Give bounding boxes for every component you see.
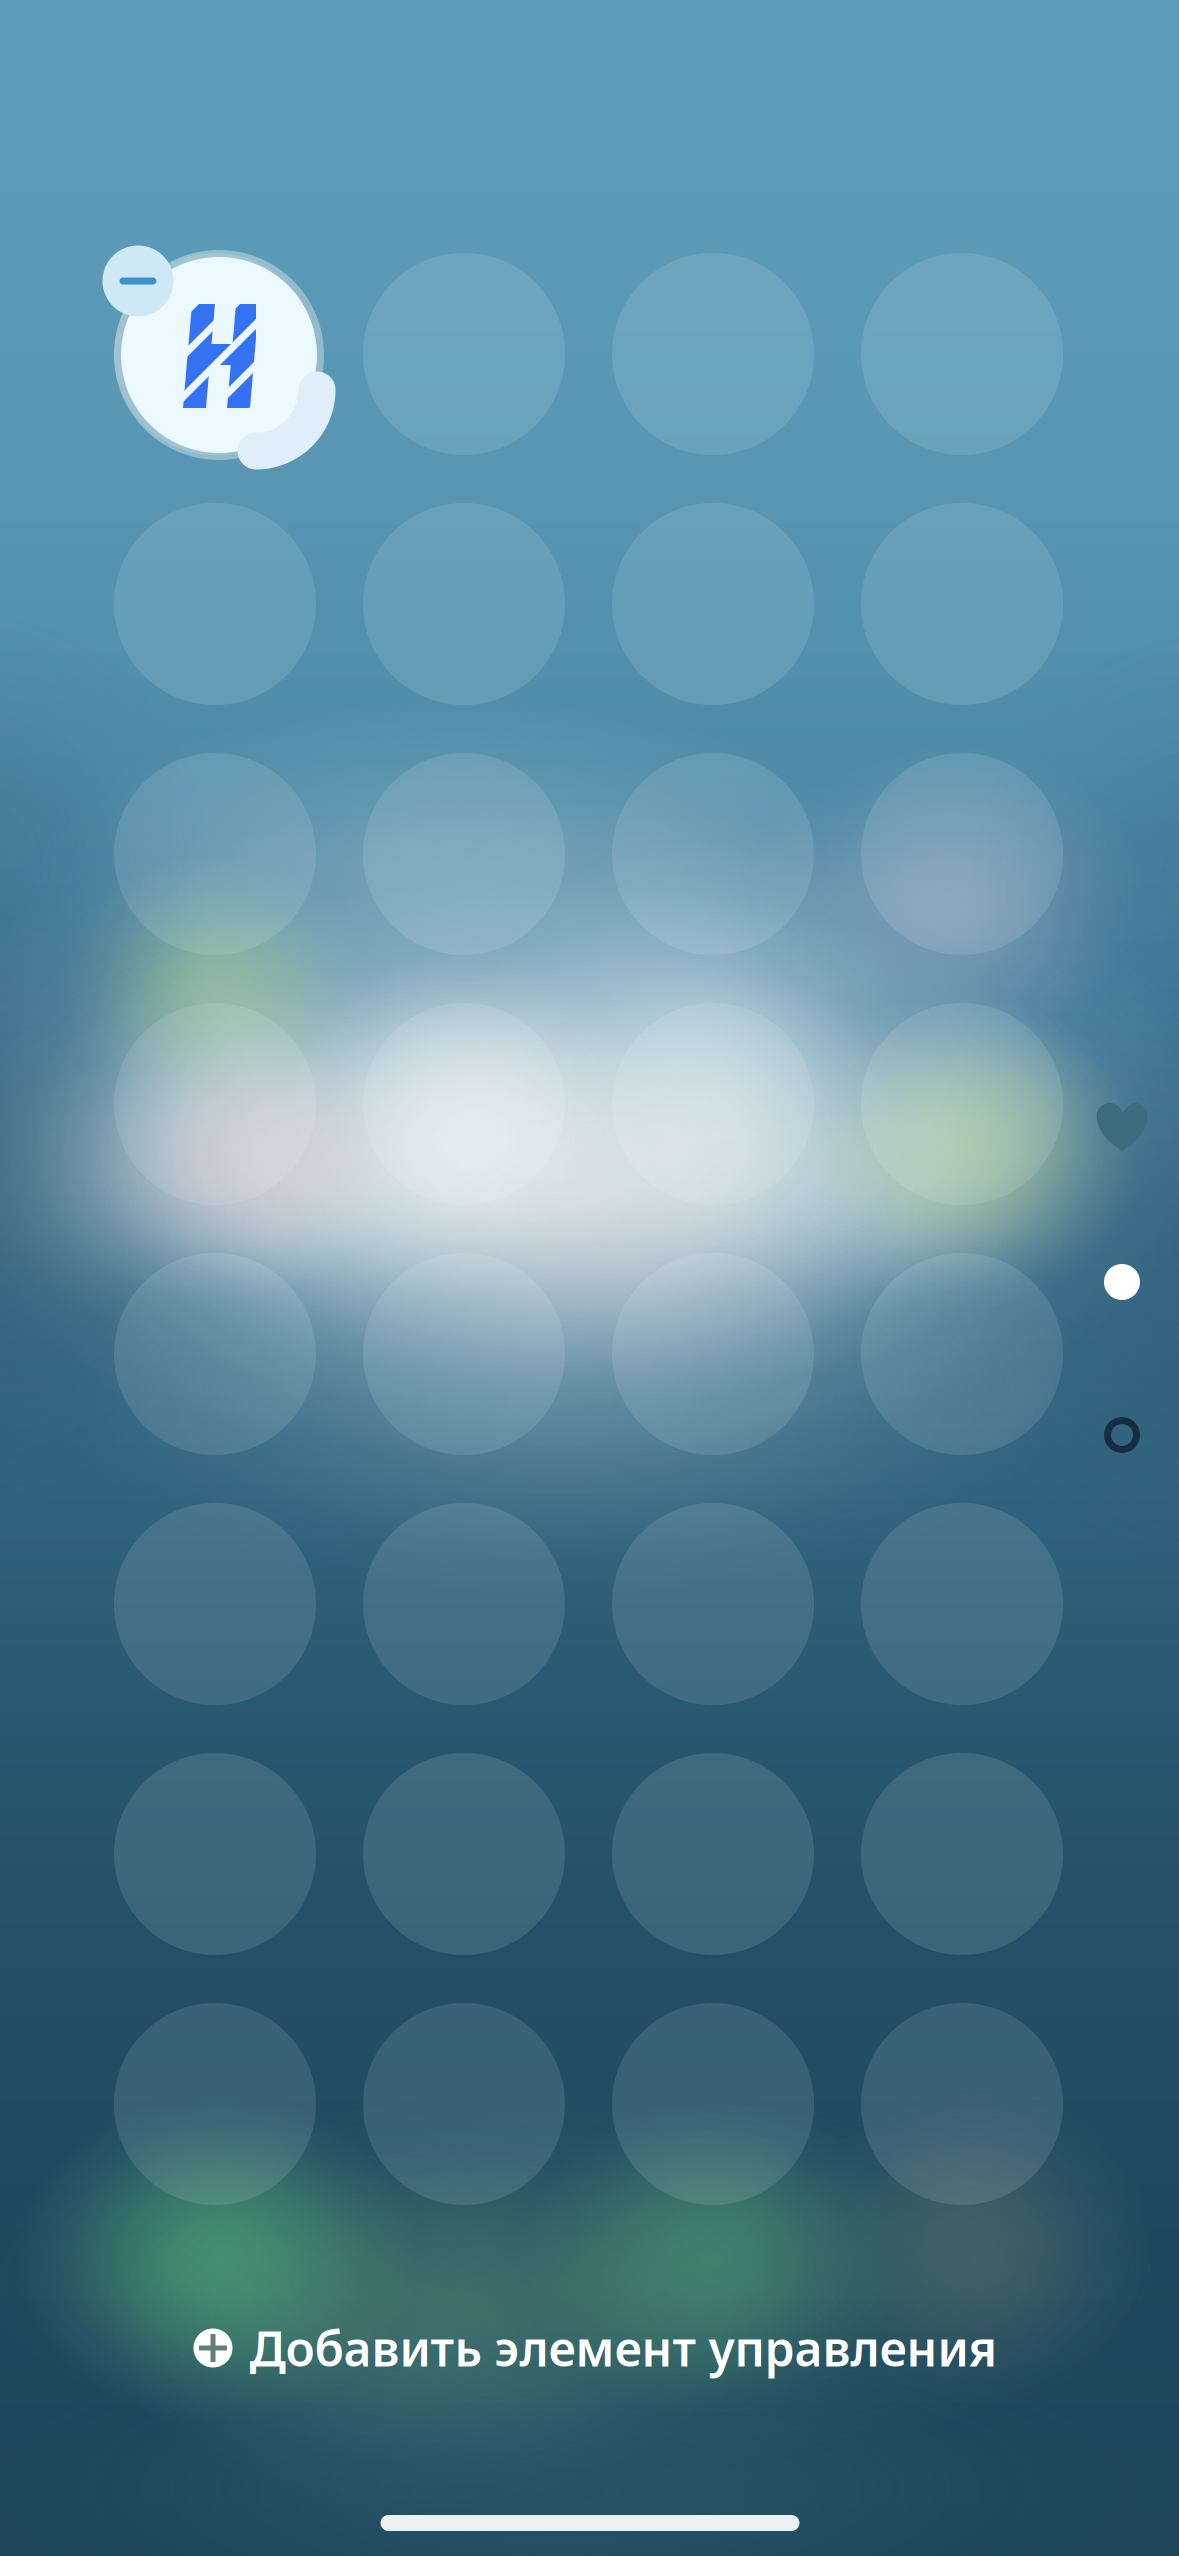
button[interactable]: Favourites page <box>1087 1092 1157 1162</box>
button[interactable]: Добавить элемент управления <box>179 2304 1011 2392</box>
staticText: Добавить элемент управления <box>249 2316 997 2380</box>
button[interactable]: Controls page <box>1087 1247 1157 1317</box>
button[interactable]: Connectivity page <box>1087 1400 1157 1470</box>
